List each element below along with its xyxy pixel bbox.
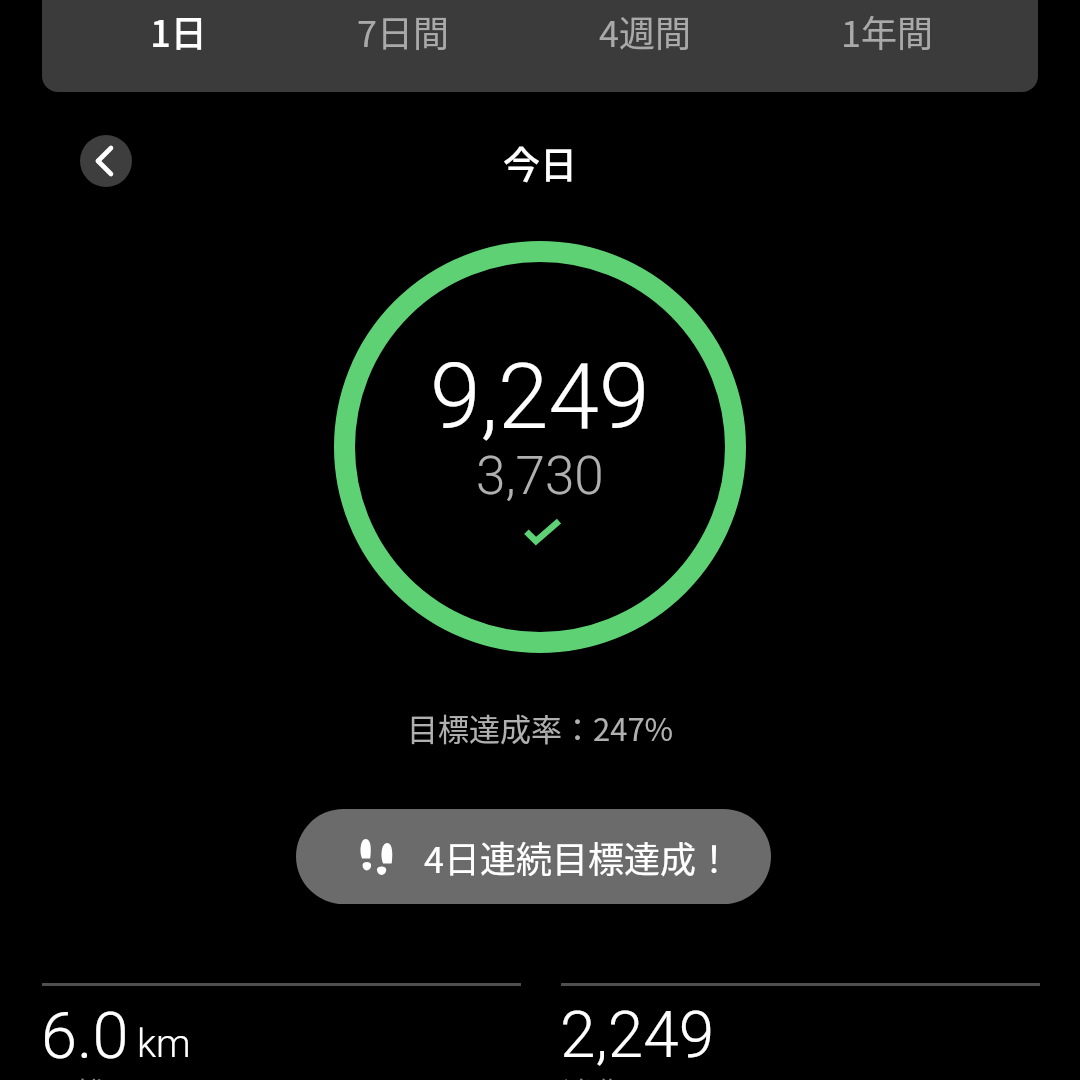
button[interactable]: 4週間 [524, 0, 766, 92]
button[interactable]: Back [80, 135, 132, 187]
staticText: 2,249 [560, 998, 715, 1073]
button[interactable]: 1年間 [766, 0, 1008, 92]
staticText: 1年間 [841, 5, 933, 57]
staticText: 3,730 [476, 445, 604, 507]
staticText: 消費カロリー [562, 1069, 742, 1080]
button[interactable]: 1日 [75, 0, 282, 92]
staticText: 6.0 [41, 998, 129, 1074]
staticText: 1日 [150, 5, 207, 57]
staticText: 今日 [503, 136, 577, 190]
button[interactable]: 7日間 [282, 0, 524, 92]
staticText: 4週間 [599, 5, 691, 57]
staticText: 目標達成率：247% [407, 705, 674, 750]
staticText: km [137, 1021, 191, 1067]
staticText: 9,249 [430, 344, 650, 451]
button[interactable]: 4日連続目標達成！ [296, 809, 771, 904]
staticText: 4日連続目標達成！ [424, 831, 732, 883]
staticText: 7日間 [357, 5, 449, 57]
staticText: 距離 [44, 1069, 104, 1080]
button[interactable]: 6.0 [42, 983, 521, 1080]
button[interactable]: 2,249 [561, 983, 1040, 1080]
